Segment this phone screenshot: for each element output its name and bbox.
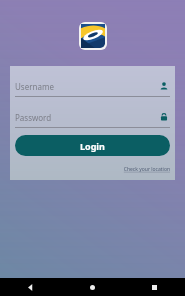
staticText: Login	[80, 140, 105, 152]
button[interactable]: Recent apps	[123, 278, 185, 296]
button[interactable]: Login	[15, 135, 170, 156]
staticText: Username	[15, 81, 158, 92]
button[interactable]: Back	[0, 278, 61, 296]
button[interactable]: Check your location	[123, 166, 170, 173]
other: Username	[158, 80, 170, 92]
other: Password	[158, 111, 170, 123]
button[interactable]: Username	[15, 76, 170, 97]
staticText: Check your location	[123, 166, 170, 173]
staticText: Password	[15, 112, 158, 123]
button[interactable]: Home	[61, 278, 123, 296]
button[interactable]: Password	[15, 107, 170, 128]
button[interactable]: App logo	[81, 24, 105, 48]
